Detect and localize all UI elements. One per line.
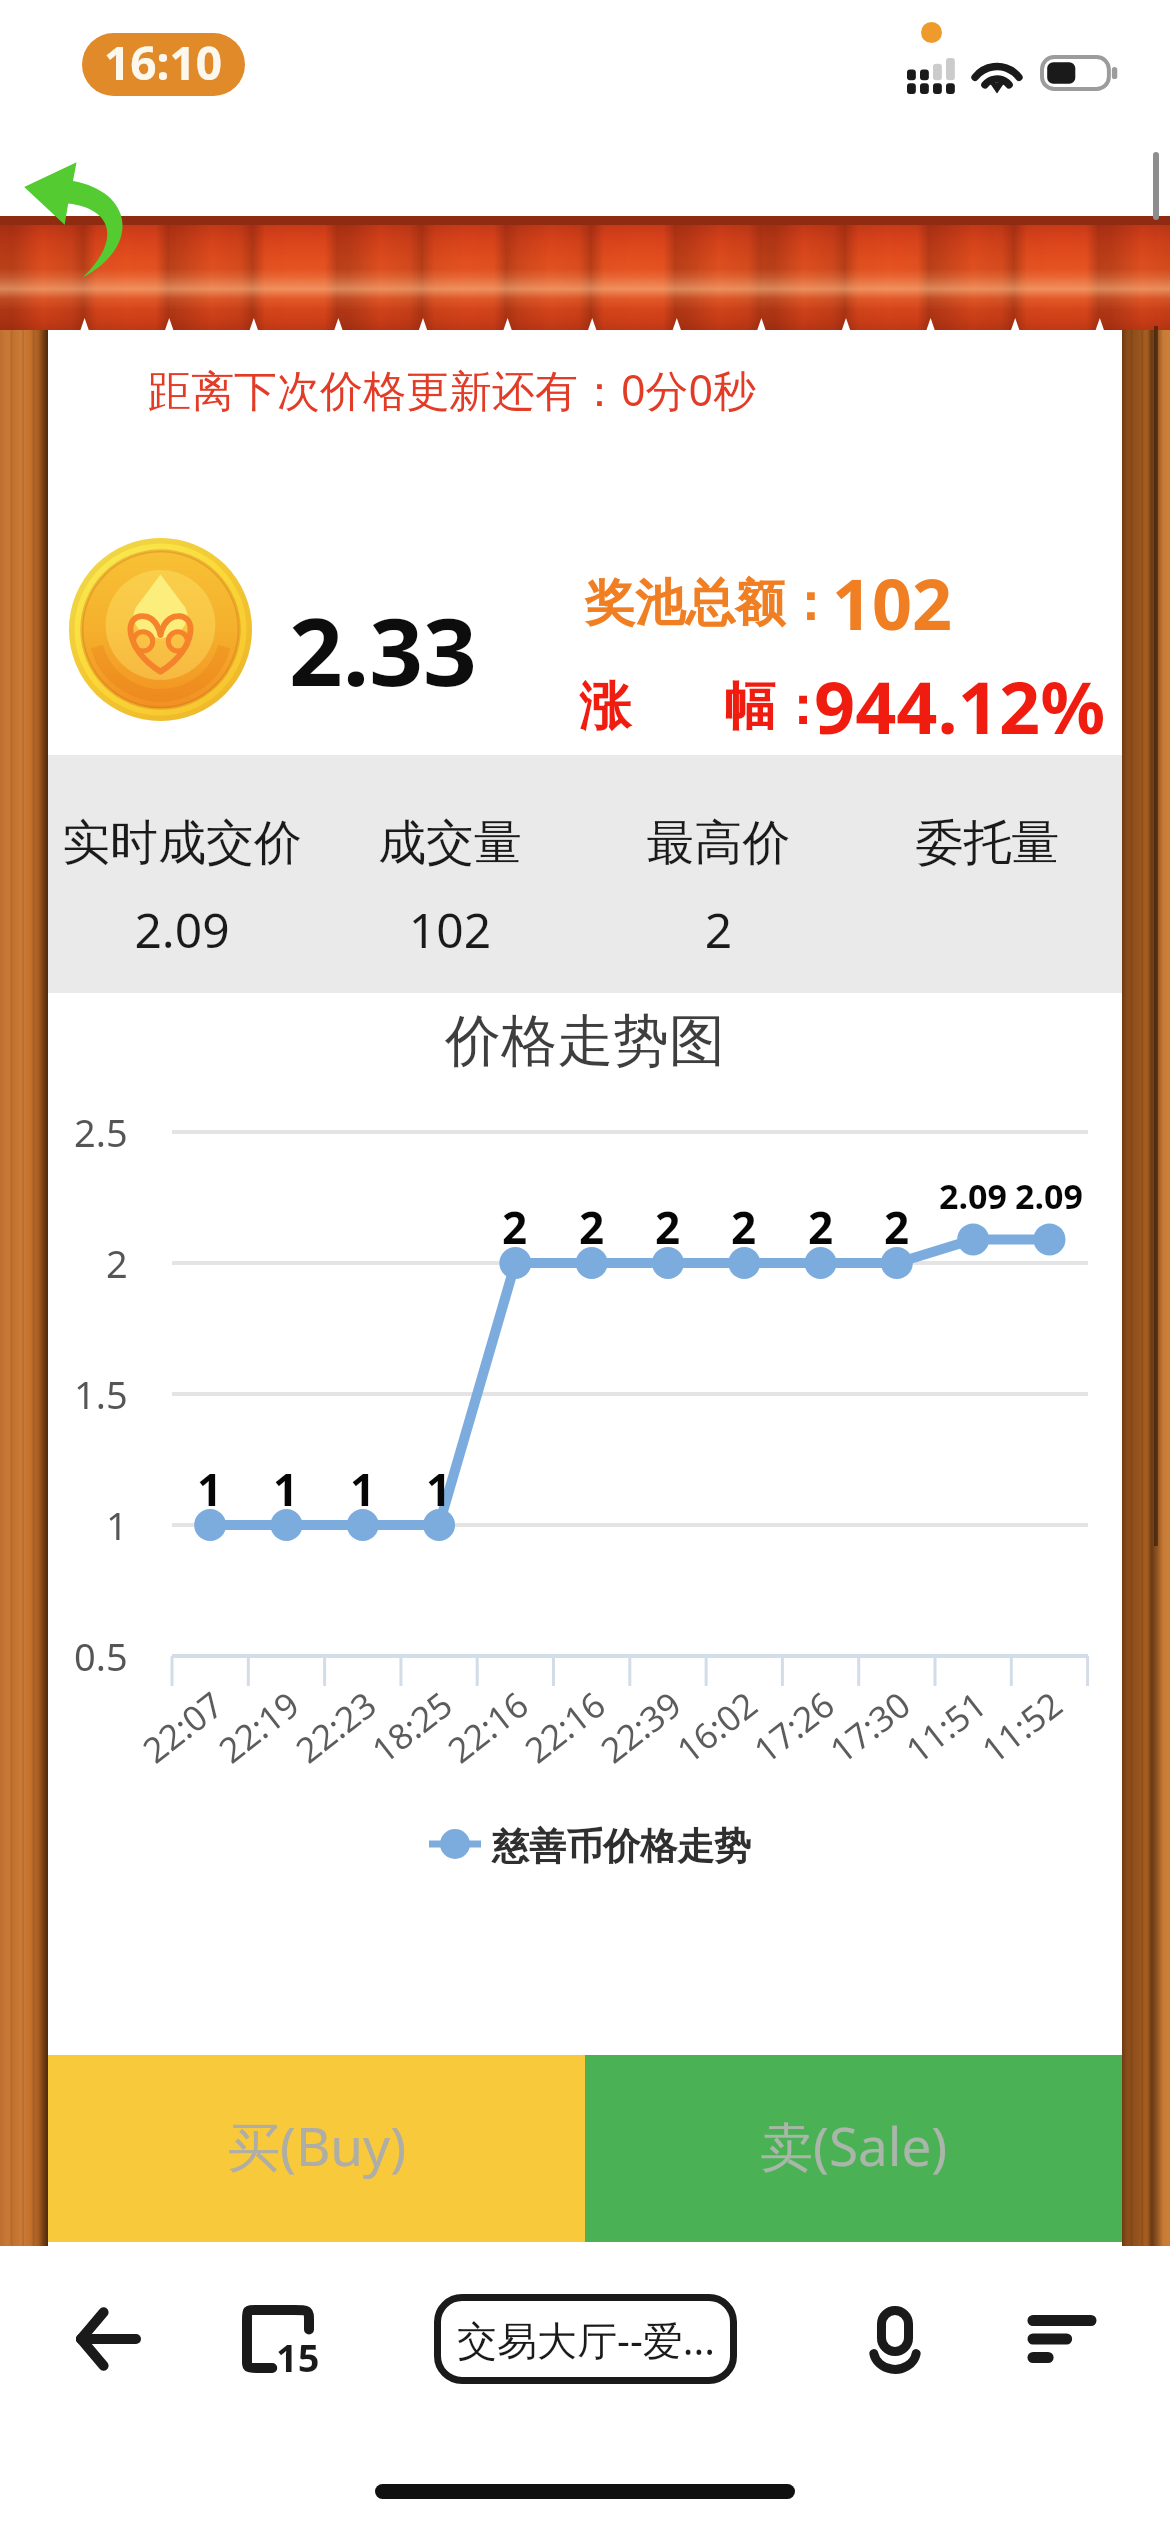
button[interactable]: 买(Buy) bbox=[48, 2055, 585, 2242]
staticText: 2.09 bbox=[48, 897, 316, 962]
staticText: 1 bbox=[197, 1459, 223, 1519]
staticText: 102 bbox=[316, 897, 584, 962]
staticText: 2 bbox=[884, 1197, 910, 1257]
staticText: 买(Buy) bbox=[227, 2109, 407, 2181]
staticText: 1.5 bbox=[74, 1368, 128, 1420]
staticText: 价格走势图 bbox=[48, 1006, 1122, 1077]
staticText: 22:07 bbox=[133, 1680, 233, 1774]
button[interactable]: Back bbox=[23, 161, 142, 279]
staticText: 22:16 bbox=[515, 1680, 615, 1774]
button[interactable]: 交易大厅--爱... bbox=[434, 2294, 737, 2384]
staticText: 2 bbox=[579, 1197, 605, 1257]
staticText: 11:51 bbox=[896, 1680, 996, 1774]
staticText: 1 bbox=[273, 1459, 299, 1519]
staticText: 距离下次价格更新还有：0分0秒 bbox=[148, 360, 757, 419]
staticText: 22:39 bbox=[591, 1680, 691, 1774]
staticText: 17:26 bbox=[744, 1680, 844, 1774]
staticText: 2.33 bbox=[289, 586, 477, 714]
staticText: 交易大厅--爱... bbox=[457, 2312, 715, 2367]
staticText: 1 bbox=[106, 1499, 128, 1551]
staticText: 11:52 bbox=[972, 1680, 1072, 1774]
staticText: 22:23 bbox=[286, 1680, 386, 1774]
staticText: 944.12% bbox=[814, 657, 1106, 755]
staticText: 最高价 bbox=[584, 813, 853, 873]
staticText: 成交量 bbox=[316, 813, 584, 873]
button[interactable]: Back bbox=[56, 2289, 156, 2389]
staticText: 2 bbox=[808, 1197, 834, 1257]
staticText: 2 bbox=[106, 1237, 128, 1289]
staticText: 17:30 bbox=[820, 1680, 920, 1774]
staticText: 2.09 bbox=[939, 1173, 1007, 1219]
staticText: 18:25 bbox=[362, 1680, 462, 1774]
staticText: 慈善币价格走势 bbox=[492, 1823, 751, 1870]
button[interactable]: Tabs, 15 open bbox=[228, 2289, 328, 2389]
staticText: 0.5 bbox=[74, 1630, 128, 1682]
staticText: 2.5 bbox=[74, 1106, 128, 1158]
staticText: 2 bbox=[731, 1197, 757, 1257]
staticText: 22:16 bbox=[438, 1680, 538, 1774]
button[interactable]: Voice search bbox=[845, 2289, 945, 2389]
staticText: 16:02 bbox=[667, 1680, 767, 1774]
staticText: 22:19 bbox=[209, 1680, 309, 1774]
staticText: 卖(Sale) bbox=[760, 2109, 948, 2181]
staticText: 实时成交价 bbox=[48, 813, 316, 873]
button[interactable]: Menu bbox=[1012, 2289, 1112, 2389]
staticText: 幅： bbox=[724, 674, 828, 740]
staticText: 15 bbox=[276, 2331, 320, 2383]
staticText: 奖池总额： bbox=[585, 572, 835, 635]
staticText: 1 bbox=[426, 1459, 452, 1519]
button[interactable]: 卖(Sale) bbox=[585, 2055, 1122, 2242]
staticText: 委托量 bbox=[853, 813, 1122, 873]
staticText: 涨 bbox=[579, 674, 631, 740]
staticText: 2 bbox=[502, 1197, 528, 1257]
staticText: 16:10 bbox=[104, 33, 223, 94]
staticText: 2 bbox=[655, 1197, 681, 1257]
staticText: 102 bbox=[832, 555, 953, 650]
staticText: 1 bbox=[350, 1459, 376, 1519]
staticText: 2.09 bbox=[1015, 1173, 1083, 1219]
staticText: 2 bbox=[584, 897, 853, 962]
